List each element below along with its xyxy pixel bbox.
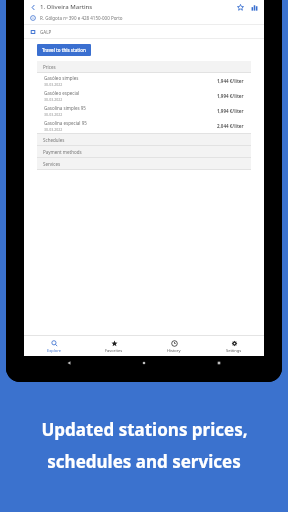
button[interactable]: Settings [204,336,264,356]
staticText: schedules and services [47,450,241,473]
button[interactable]: History [144,336,204,356]
staticText: 30-03-2022 [44,97,63,102]
button[interactable]: R. Gólgota nº 390 e 428 4150-000 Porto [30,11,258,24]
staticText: 1,944 €/liter [217,78,244,84]
staticText: Prices [43,64,56,70]
staticText: 30-03-2022 [44,112,63,117]
staticText: Gasóleo simples [44,75,79,81]
button[interactable]: Explore [24,336,84,356]
button[interactable]: Statistics [251,4,258,11]
button[interactable]: Gasolina especial 95 [44,118,244,133]
button[interactable]: Payment methods [37,146,251,157]
staticText: Explore [47,348,62,353]
staticText: 30-03-2022 [44,82,63,87]
staticText: 1,994 €/liter [217,108,244,114]
staticText: Schedules [43,137,65,143]
staticText: Updated stations prices, [41,418,248,441]
staticText: 1,994 €/liter [217,93,244,99]
staticText: 1. Oliveira Martins [40,3,93,11]
staticText: History [167,348,181,353]
staticText: Travel to this station [42,47,86,53]
button[interactable]: Services [37,158,251,169]
button[interactable]: Back [30,4,37,11]
button[interactable]: Favorites [84,336,144,356]
staticText: Gasolina simples 95 [44,105,86,111]
button[interactable]: Recents [216,360,222,366]
staticText: Gasolina especial 95 [44,120,87,126]
button[interactable]: Travel to this station [37,44,91,56]
button[interactable]: Home [141,360,147,366]
staticText: GALP [40,29,52,35]
button[interactable]: Gasolina simples 95 [44,103,244,118]
staticText: Gasóleo especial [44,90,80,96]
staticText: Favorites [105,348,123,353]
button[interactable]: Gasóleo simples [44,73,244,88]
staticText: Payment methods [43,149,82,155]
button[interactable]: GALP [30,25,258,38]
staticText: 2,044 €/liter [217,123,244,129]
staticText: R. Gólgota nº 390 e 428 4150-000 Porto [40,15,123,21]
staticText: Settings [226,348,242,353]
button[interactable]: Back [66,360,72,366]
staticText: 30-03-2022 [44,127,63,132]
button[interactable]: Add to favorites [237,4,244,11]
staticText: Services [43,161,61,167]
button[interactable]: Gasóleo especial [44,88,244,103]
button[interactable]: Schedules [37,134,251,145]
button[interactable]: Prices [37,61,251,72]
